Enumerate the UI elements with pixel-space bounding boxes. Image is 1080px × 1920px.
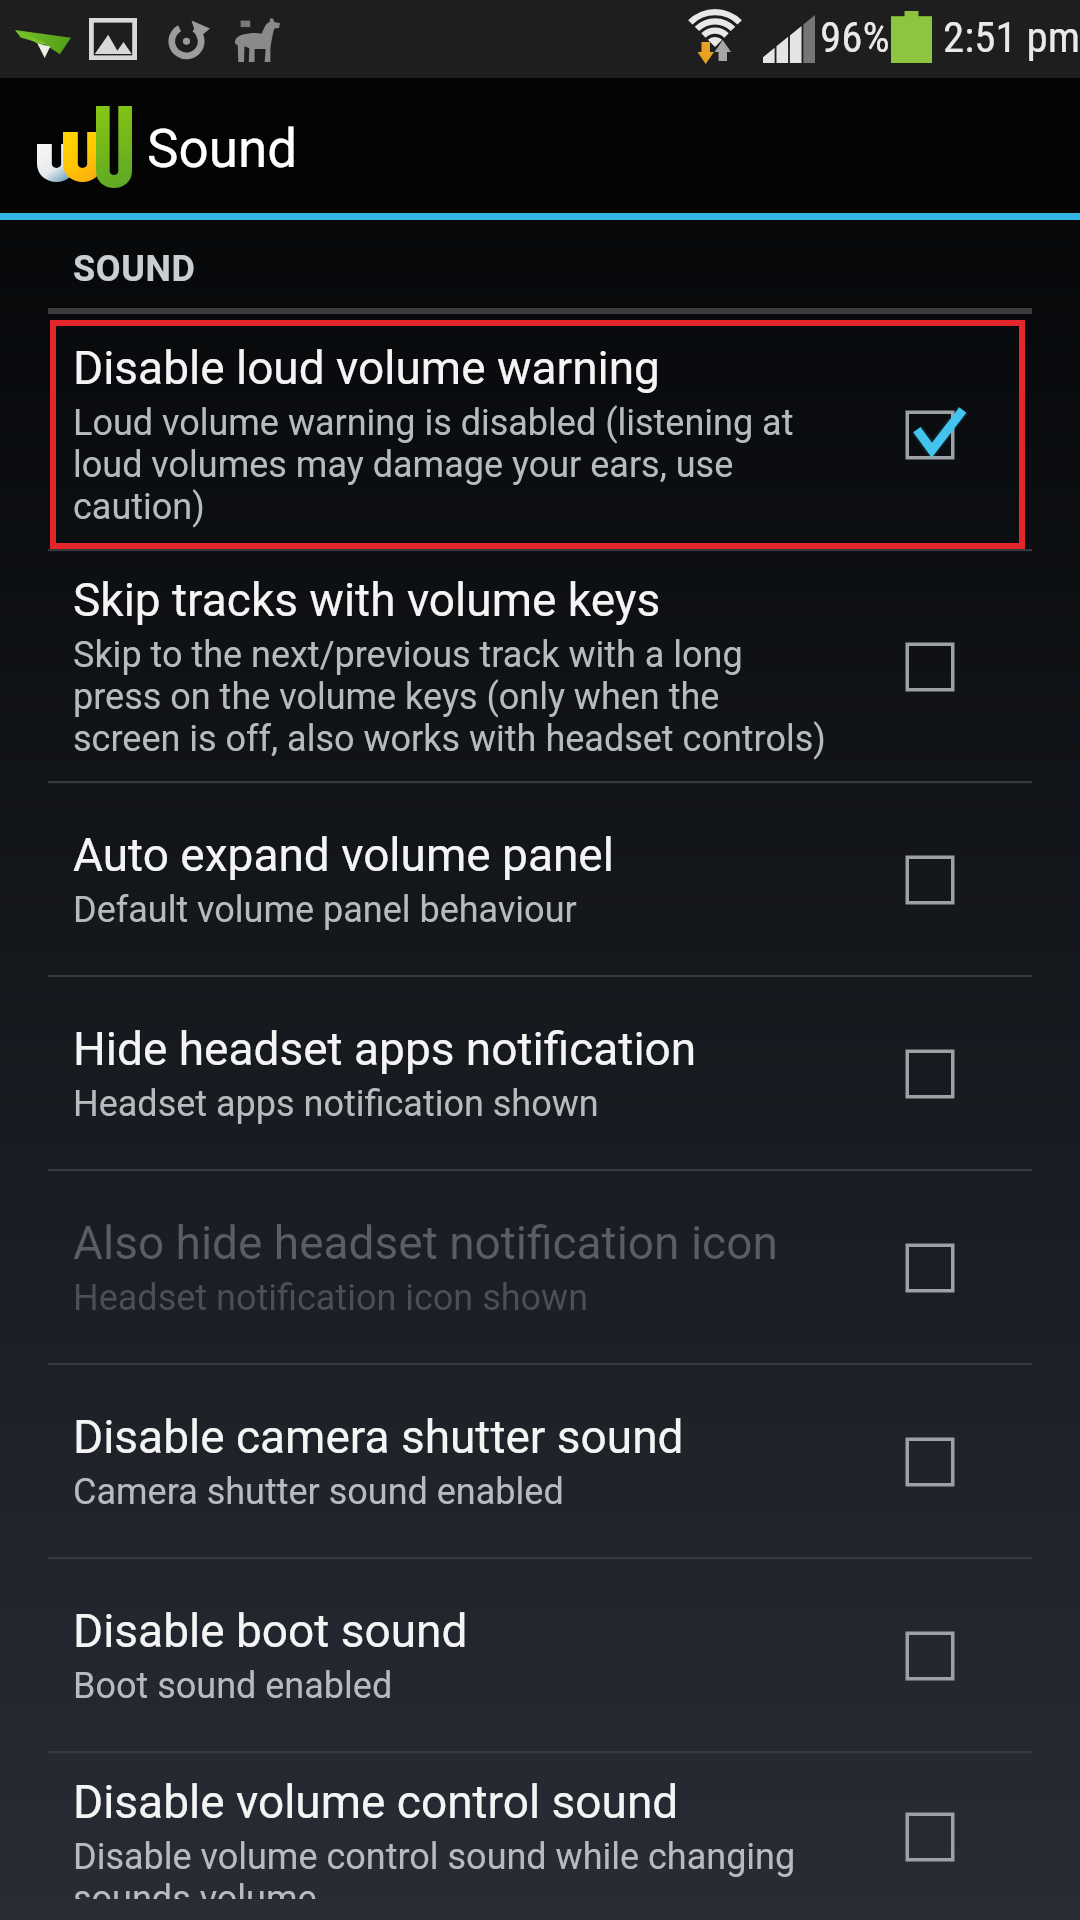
staticText: Headset apps notification shown (73, 1083, 599, 1125)
staticText: Hide headset apps notification (73, 1022, 697, 1076)
staticText: SOUND (73, 248, 196, 290)
staticText: Disable boot sound (73, 1604, 468, 1658)
button[interactable]: Checked (882, 387, 978, 483)
button[interactable]: Unchecked (882, 1608, 978, 1704)
button[interactable]: Skip tracks with volume keys (0, 552, 1080, 781)
staticText: Camera shutter sound enabled (73, 1471, 564, 1513)
staticText: Default volume panel behaviour (73, 889, 577, 931)
button[interactable]: Disable loud volume warning (0, 320, 1080, 549)
button[interactable]: Unchecked (882, 1789, 978, 1885)
button[interactable]: Disable camera shutter sound (0, 1366, 1080, 1557)
button[interactable]: Unchecked (882, 1026, 978, 1122)
staticText: Skip tracks with volume keys (73, 573, 661, 627)
button[interactable]: Unchecked (882, 832, 978, 928)
button[interactable]: Unchecked (882, 1220, 978, 1316)
button[interactable]: Unchecked (882, 619, 978, 715)
staticText: Disable volume control sound (73, 1775, 679, 1829)
staticText: Disable volume control sound while chang… (73, 1836, 833, 1899)
button[interactable]: Hide headset apps notification (0, 978, 1080, 1169)
button[interactable]: Disable volume control sound (0, 1754, 1080, 1920)
staticText: Boot sound enabled (73, 1665, 393, 1707)
button[interactable]: Auto expand volume panel (0, 784, 1080, 975)
staticText: Headset notification icon shown (73, 1277, 589, 1319)
staticText: Loud volume warning is disabled (listeni… (73, 402, 833, 528)
staticText: 2:51 pm (943, 12, 1080, 62)
button[interactable]: Unchecked (882, 1414, 978, 1510)
button[interactable]: Also hide headset notification icon (0, 1172, 1080, 1363)
button[interactable]: Disable boot sound (0, 1560, 1080, 1751)
staticText: Disable loud volume warning (73, 341, 660, 395)
staticText: Skip to the next/previous track with a l… (73, 634, 833, 760)
staticText: Disable camera shutter sound (73, 1410, 684, 1464)
staticText: Auto expand volume panel (73, 828, 614, 882)
staticText: 96% (820, 12, 890, 62)
staticText: Also hide headset notification icon (73, 1216, 778, 1270)
staticText: Sound (147, 118, 298, 180)
